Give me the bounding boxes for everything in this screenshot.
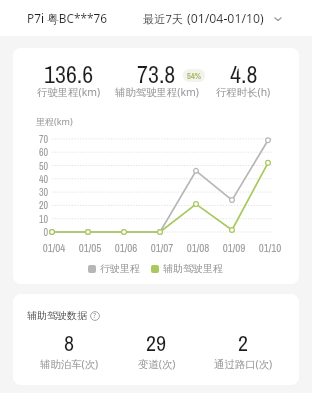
staticText: 4.8 [230, 58, 258, 90]
staticText: 通过路口(次) [214, 357, 273, 371]
staticText: 50 [26, 160, 48, 173]
staticText: 01/10 [252, 241, 288, 256]
staticText: 辅助驾驶里程(km) [115, 85, 199, 99]
staticText: 70 [26, 133, 48, 146]
button[interactable]: 2 [200, 328, 287, 372]
staticText: 136.6 [44, 58, 94, 90]
staticText: 01/06 [108, 241, 144, 256]
staticText: 里程(km) [36, 115, 73, 127]
staticText: 辅助驾驶数据 [27, 309, 87, 322]
button[interactable]: 4.8 [200, 58, 287, 104]
other: Change date range [273, 14, 283, 24]
staticText: ? [93, 311, 97, 321]
staticText: 01/07 [144, 241, 180, 256]
staticText: 54% [187, 70, 201, 81]
staticText: 60 [26, 146, 48, 159]
button[interactable]: 136.6 [25, 58, 113, 104]
staticText: 01/09 [216, 241, 252, 256]
staticText: (01/04-01/10) [187, 10, 264, 27]
staticText: 40 [26, 173, 48, 186]
button[interactable]: 73.8 [113, 58, 200, 104]
staticText: 变道(次) [138, 357, 176, 371]
staticText: 行程时长(h) [216, 85, 271, 99]
button[interactable]: 29 [113, 328, 200, 372]
staticText: 10 [26, 213, 48, 226]
staticText: 行驶里程(km) [37, 85, 101, 99]
staticText: P7i 粤BC***76 [27, 10, 107, 26]
staticText: 73.8 [137, 58, 176, 90]
button[interactable]: 最近7天 [143, 10, 283, 27]
staticText: 最近7天 [143, 11, 183, 26]
other: Help [90, 311, 100, 321]
staticText: 20 [26, 199, 48, 212]
staticText: 8 [64, 328, 75, 358]
button[interactable]: 8 [25, 328, 113, 372]
staticText: 辅助泊车(次) [40, 357, 99, 371]
staticText: 01/04 [36, 241, 72, 256]
staticText: 30 [26, 186, 48, 199]
staticText: 29 [146, 328, 167, 358]
button[interactable]: 辅助驾驶数据 [27, 309, 100, 322]
staticText: 行驶里程 [100, 262, 140, 275]
staticText: 2 [238, 328, 249, 358]
staticText: 辅助驾驶里程 [163, 262, 223, 275]
staticText: 01/05 [72, 241, 108, 256]
staticText: 01/08 [180, 241, 216, 256]
staticText: 0 [26, 226, 48, 239]
